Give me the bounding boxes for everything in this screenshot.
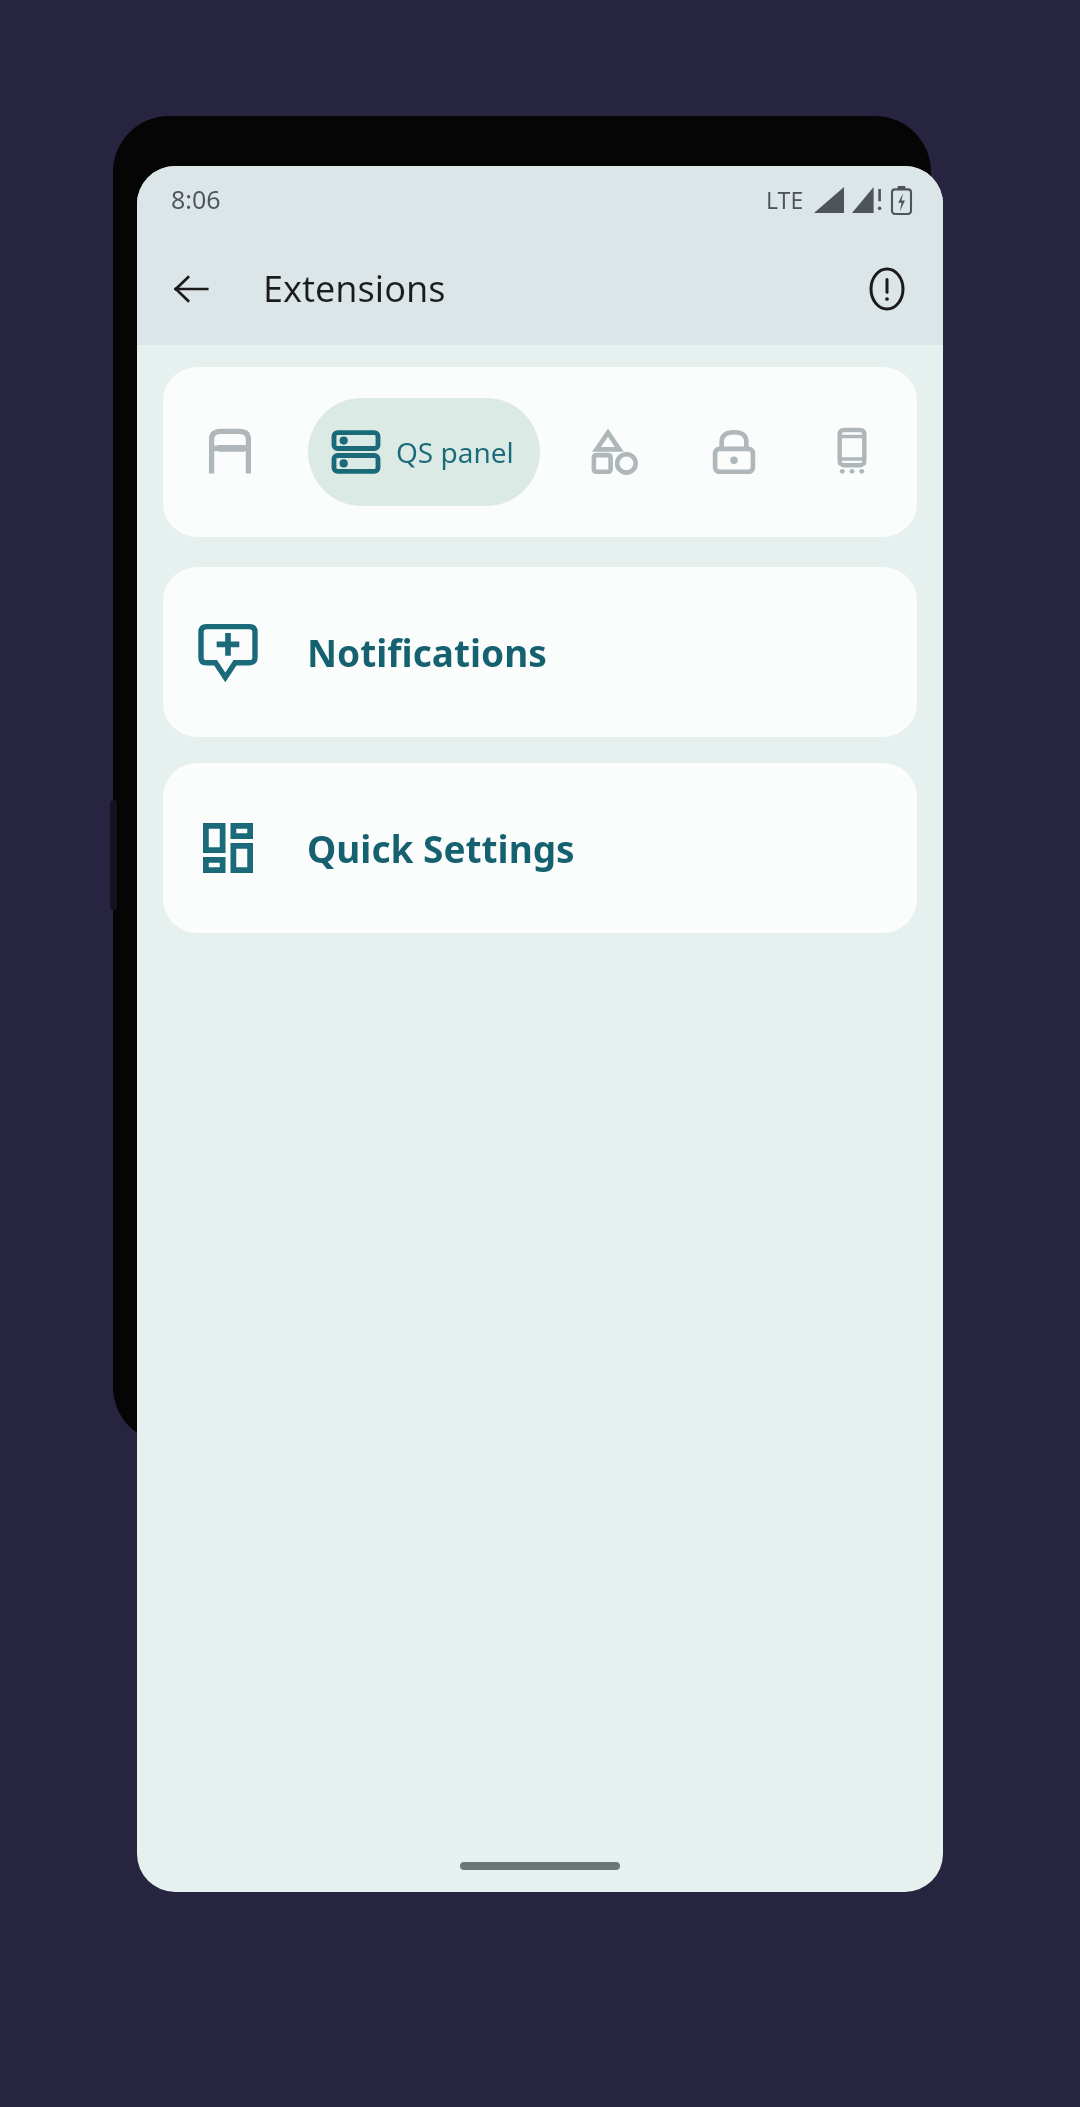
staticText: Notifications: [307, 627, 547, 677]
button[interactable]: Quick Settings: [163, 763, 917, 933]
button[interactable]: Back: [155, 253, 227, 325]
button[interactable]: Lock screen: [691, 402, 777, 502]
button[interactable]: Status bar: [185, 402, 275, 502]
staticText: Quick Settings: [307, 823, 575, 873]
button[interactable]: Device: [809, 402, 895, 502]
button[interactable]: Information: [853, 255, 921, 323]
staticText: LTE: [766, 184, 804, 215]
staticText: QS panel: [396, 433, 514, 471]
button[interactable]: QS panel: [308, 398, 540, 506]
button[interactable]: Shapes: [572, 402, 658, 502]
button[interactable]: Notifications: [163, 567, 917, 737]
staticText: 8:06: [171, 182, 221, 216]
staticText: Extensions: [263, 264, 446, 313]
